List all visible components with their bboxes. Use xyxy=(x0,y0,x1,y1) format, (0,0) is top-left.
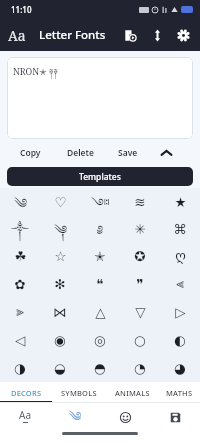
staticText: ⫸ xyxy=(16,305,24,319)
staticText: ◉ xyxy=(54,332,66,348)
staticText: ≋ xyxy=(134,194,146,210)
button[interactable]: Aa xyxy=(8,26,26,45)
button[interactable]: ★ xyxy=(160,188,200,215)
staticText: Templates xyxy=(79,171,121,183)
button[interactable]: △ xyxy=(80,298,120,326)
staticText: △ xyxy=(95,304,106,320)
staticText: ✳ xyxy=(134,221,146,237)
button[interactable]: ⫷ xyxy=(160,270,200,298)
button[interactable]: ✪ xyxy=(120,242,160,270)
button[interactable]: Emoji xyxy=(100,403,150,432)
staticText: ◓ xyxy=(94,360,106,376)
staticText: ༆ xyxy=(54,215,67,242)
button[interactable]: Copy xyxy=(15,147,46,159)
button[interactable]: ༄ xyxy=(0,188,40,215)
staticText: ⋈ xyxy=(53,304,67,320)
button[interactable]: ♡ xyxy=(40,188,80,215)
button[interactable]: ANIMALS xyxy=(106,382,158,403)
staticText: ༄ xyxy=(14,188,27,215)
button[interactable]: ≋ xyxy=(120,188,160,215)
staticText: ☘ xyxy=(14,248,27,264)
staticText: ✻ xyxy=(54,276,66,292)
button[interactable]: ◐ xyxy=(160,326,200,354)
staticText: ▽ xyxy=(135,304,146,320)
staticText: ◒ xyxy=(54,360,66,376)
staticText: ⫷ xyxy=(176,277,184,291)
button[interactable]: ▽ xyxy=(120,298,160,326)
button[interactable]: Save xyxy=(113,147,143,159)
button[interactable]: MATHS xyxy=(158,382,200,403)
button[interactable]: ༅ xyxy=(80,215,120,242)
button[interactable]: ⌘ xyxy=(160,215,200,242)
staticText: Aa xyxy=(19,408,31,422)
staticText: ★ xyxy=(174,194,187,210)
button[interactable]: ☆ xyxy=(40,242,80,270)
button[interactable]: ◑ xyxy=(0,354,40,382)
staticText: ANIMALS xyxy=(115,388,150,398)
button[interactable]: ▷ xyxy=(160,298,200,326)
button[interactable]: ◁ xyxy=(0,326,40,354)
button[interactable]: ❝ xyxy=(80,270,120,298)
button[interactable]: ღ xyxy=(160,242,200,270)
staticText: ✭ xyxy=(94,248,106,264)
staticText: ◐ xyxy=(174,332,186,348)
button[interactable]: ◒ xyxy=(40,354,80,382)
staticText: ☆ xyxy=(54,248,67,264)
staticText: MATHS xyxy=(166,388,193,398)
staticText: ❞ xyxy=(136,276,144,292)
staticText: SYMBOLS xyxy=(61,388,97,398)
button[interactable]: Text size xyxy=(146,24,168,46)
button[interactable]: ༆ xyxy=(40,215,80,242)
button[interactable]: SYMBOLS xyxy=(52,382,106,403)
button[interactable]: ⋈ xyxy=(40,298,80,326)
button[interactable]: Delete xyxy=(62,147,99,159)
staticText: ◎ xyxy=(94,332,106,348)
button[interactable]: NRON✭ ༈༈ xyxy=(7,57,193,139)
button[interactable]: ☘ xyxy=(0,242,40,270)
staticText: ◕ xyxy=(174,360,186,376)
staticText: ▷ xyxy=(175,304,186,320)
button[interactable]: Aa xyxy=(0,403,50,432)
button[interactable]: Templates xyxy=(7,167,193,186)
button[interactable]: ✳ xyxy=(120,215,160,242)
staticText: DECORS xyxy=(11,388,42,398)
button[interactable]: ◕ xyxy=(160,354,200,382)
button[interactable]: ○ xyxy=(120,326,160,354)
staticText: ✿ xyxy=(14,276,26,292)
staticText: ❝ xyxy=(96,276,104,292)
button[interactable]: DECORS xyxy=(0,382,52,403)
staticText: ✪ xyxy=(134,248,146,264)
button[interactable]: ✿ xyxy=(0,270,40,298)
staticText: ○ xyxy=(134,332,146,348)
button[interactable]: ◔ xyxy=(120,354,160,382)
button[interactable]: ✭ xyxy=(80,242,120,270)
button[interactable]: ༄ xyxy=(50,403,100,432)
staticText: ༅ xyxy=(97,215,103,242)
staticText: ◔ xyxy=(134,360,146,376)
button[interactable]: Save xyxy=(150,403,200,432)
button[interactable]: Saved texts xyxy=(119,24,141,46)
staticText: ♡ xyxy=(54,194,67,210)
button[interactable]: ◓ xyxy=(80,354,120,382)
button[interactable]: ⫸ xyxy=(0,298,40,326)
staticText: ⌘ xyxy=(173,221,187,237)
button[interactable]: ◎ xyxy=(80,326,120,354)
button[interactable]: Settings xyxy=(172,24,194,46)
staticText: ༒ xyxy=(11,215,29,242)
button[interactable]: ༇ xyxy=(80,188,120,215)
staticText: ღ xyxy=(175,248,186,264)
button[interactable]: ༒ xyxy=(0,215,40,242)
staticText: NRON✭ ༈༈ xyxy=(13,62,58,87)
staticText: ◁ xyxy=(15,332,26,348)
staticText: 11:10 xyxy=(11,4,32,15)
button[interactable]: ❞ xyxy=(120,270,160,298)
staticText: ༄ xyxy=(69,402,82,431)
button[interactable]: ◉ xyxy=(40,326,80,354)
staticText: ◑ xyxy=(14,360,26,376)
staticText: ༇ xyxy=(91,188,110,215)
button[interactable]: ✻ xyxy=(40,270,80,298)
staticText: Letter Fonts xyxy=(39,27,106,43)
button[interactable]: Collapse xyxy=(155,142,177,164)
